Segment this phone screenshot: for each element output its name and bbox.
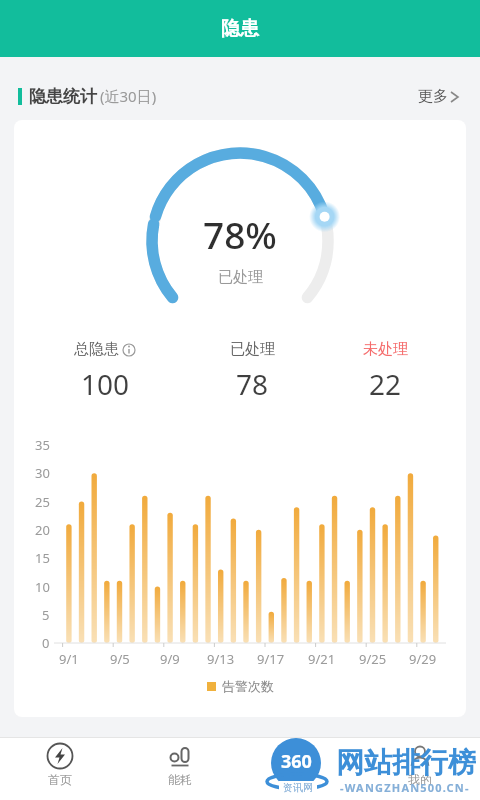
staticText: 35	[35, 436, 50, 454]
staticText: 隐患统计	[29, 86, 97, 107]
staticText: 9/9	[160, 650, 180, 668]
staticText: 9/29	[409, 650, 437, 668]
button[interactable]: 首页	[0, 737, 120, 800]
staticText: 总隐患	[74, 340, 119, 359]
staticText: 已处理	[218, 268, 263, 287]
staticText: 20	[35, 521, 50, 539]
staticText: 78%	[203, 209, 277, 259]
staticText: 未处理	[363, 340, 408, 359]
staticText: 100	[81, 365, 130, 403]
staticText: -WANGZHAN500.CN-	[340, 780, 470, 795]
staticText: 隐患	[221, 17, 259, 41]
staticText: 首页	[48, 772, 72, 787]
staticText: 网站排行榜	[336, 745, 476, 780]
staticText: 9/25	[359, 650, 387, 668]
staticText: 360	[281, 749, 312, 774]
button[interactable]: 总隐患	[31, 340, 179, 403]
staticText: 9/1	[59, 650, 79, 668]
staticText: 78	[236, 365, 269, 403]
staticText: 9/5	[110, 650, 130, 668]
button[interactable]: 已处理	[178, 340, 326, 403]
button[interactable]: 我的	[360, 737, 480, 800]
staticText: 9/13	[207, 650, 235, 668]
staticText: 25	[35, 493, 50, 511]
button[interactable]: 更多	[418, 87, 458, 106]
button[interactable]: 隐患	[240, 737, 360, 800]
staticText: (近30日)	[100, 86, 157, 106]
staticText: 5	[42, 606, 50, 624]
staticText: 0	[42, 634, 50, 652]
staticText: 能耗	[168, 772, 192, 787]
staticText: 我的	[408, 772, 432, 787]
staticText: 告警次数	[222, 678, 274, 694]
staticText: 30	[35, 464, 50, 482]
staticText: 9/17	[257, 650, 285, 668]
staticText: 已处理	[230, 340, 275, 359]
staticText: 22	[369, 365, 402, 403]
staticText: 隐患	[288, 772, 312, 787]
button[interactable]: 能耗	[120, 737, 240, 800]
staticText: 9/21	[308, 650, 336, 668]
staticText: 10	[35, 578, 50, 596]
staticText: 更多	[418, 87, 448, 106]
staticText: 15	[35, 549, 50, 567]
staticText: 资讯网	[283, 781, 313, 794]
button[interactable]: 未处理	[311, 340, 459, 403]
